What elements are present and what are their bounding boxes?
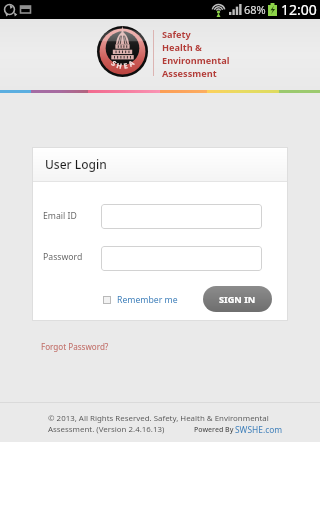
button[interactable]: Remember me (103, 294, 178, 306)
staticText: © 2013, All Rights Reserved. Safety, Hea… (48, 413, 269, 424)
button[interactable]: SIGN IN (203, 286, 272, 312)
staticText: Powered By (194, 425, 234, 435)
staticText: Password (43, 251, 83, 263)
staticText: Environmental (162, 54, 230, 67)
button[interactable]: Forgot Password? (41, 341, 109, 352)
staticText: 12:00 (281, 0, 317, 19)
staticText: SIGN IN (219, 293, 256, 306)
staticText: User Login (45, 156, 107, 172)
button[interactable] (101, 204, 262, 229)
staticText: 68% (244, 2, 266, 17)
staticText: Remember me (117, 294, 178, 306)
button[interactable]: SWSHE.com (235, 424, 283, 435)
staticText: Assessment. (Version 2.4.16.13) (48, 424, 165, 435)
staticText: Health & (162, 41, 202, 54)
staticText: Safety (162, 28, 191, 41)
staticText: Assessment (162, 67, 217, 80)
button[interactable] (101, 246, 262, 271)
staticText: Email ID (43, 210, 77, 222)
